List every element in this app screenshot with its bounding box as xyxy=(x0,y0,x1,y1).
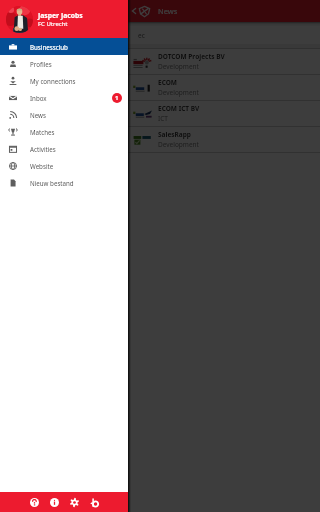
button[interactable]: Settings xyxy=(67,495,81,509)
button[interactable]: Businessclub xyxy=(0,38,128,55)
button[interactable]: Inbox xyxy=(0,89,128,106)
button[interactable]: Activities xyxy=(0,140,128,157)
button[interactable]: Website xyxy=(0,157,128,174)
button[interactable]: Help xyxy=(27,495,41,509)
staticText: FC Utrecht xyxy=(38,20,68,28)
staticText: Website xyxy=(30,162,54,170)
staticText: My connections xyxy=(30,77,76,85)
staticText: ICT xyxy=(158,114,168,123)
staticText: Inbox xyxy=(30,94,47,102)
staticText: Nieuw bestand xyxy=(30,179,74,187)
button[interactable]: My connections xyxy=(0,72,128,89)
staticText: Matches xyxy=(30,128,55,136)
button[interactable]: Information xyxy=(47,495,61,509)
button[interactable]: ECOM ICT BV xyxy=(128,101,320,126)
button[interactable]: Matches xyxy=(0,123,128,140)
button[interactable]: ECOM xyxy=(128,75,320,100)
button[interactable]: Back xyxy=(129,6,139,16)
staticText: Development xyxy=(158,88,199,97)
staticText: Activities xyxy=(30,145,56,153)
staticText: ECOM xyxy=(158,78,177,87)
staticText: Development xyxy=(158,140,199,149)
button[interactable]: DOTCOM Projects BV xyxy=(128,49,320,74)
button[interactable]: News xyxy=(0,106,128,123)
staticText: 1 xyxy=(115,94,119,102)
button[interactable]: SalesRapp xyxy=(128,127,320,152)
button[interactable]: Profiles xyxy=(0,55,128,72)
staticText: Businessclub xyxy=(30,43,68,51)
button[interactable] xyxy=(128,0,320,512)
staticText: Profiles xyxy=(30,60,52,68)
button[interactable]: Nieuw bestand xyxy=(0,174,128,191)
staticText: ECOM ICT BV xyxy=(158,104,200,113)
staticText: DOTCOM Projects BV xyxy=(158,52,225,61)
staticText: News xyxy=(30,111,46,119)
staticText: SalesRapp xyxy=(158,130,191,139)
staticText: Development xyxy=(158,62,199,71)
staticText: News xyxy=(158,6,178,16)
staticText: Jasper Jacobs xyxy=(38,11,83,20)
button[interactable]: Businessclub logo xyxy=(87,495,101,509)
staticText: ec xyxy=(138,31,145,40)
